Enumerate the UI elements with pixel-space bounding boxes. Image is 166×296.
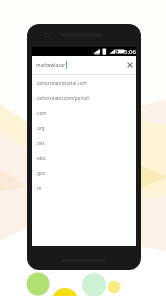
button[interactable]: .gov [32, 165, 136, 180]
staticText: mathewlazar [36, 62, 66, 69]
button[interactable]: .net [32, 135, 136, 150]
staticText: .org [36, 125, 45, 131]
staticText: .edu [36, 155, 46, 161]
button[interactable]: .in [32, 180, 136, 195]
button[interactable]: mathewlazar [32, 56, 136, 74]
staticText: .gov [36, 170, 46, 176]
staticText: .zohocreatorportal.com [36, 80, 87, 86]
button[interactable]: .org [32, 120, 136, 135]
staticText: .net [36, 140, 45, 146]
button[interactable]: Clear text [125, 60, 135, 70]
button[interactable]: .zohocreatorportal.com [32, 75, 136, 90]
button[interactable]: .edu [32, 150, 136, 165]
staticText: .in [36, 185, 42, 191]
button[interactable]: .com [32, 105, 136, 120]
staticText: 5:06 [124, 48, 136, 56]
button[interactable]: .zohocreator.com/portal/ [32, 90, 136, 105]
staticText: .zohocreator.com/portal/ [36, 95, 90, 101]
staticText: .com [36, 110, 47, 116]
